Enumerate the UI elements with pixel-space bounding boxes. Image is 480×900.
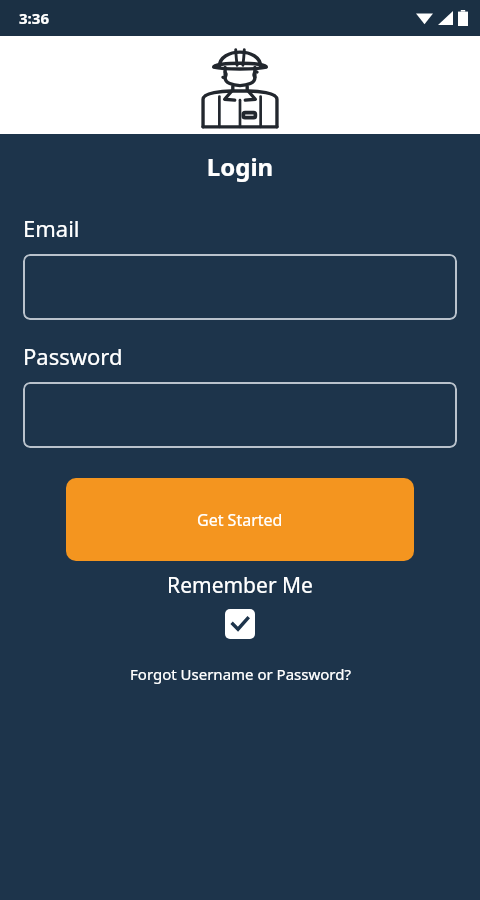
- staticText: 3:36: [19, 8, 49, 28]
- button[interactable]: [23, 382, 457, 448]
- staticText: Remember Me: [0, 571, 480, 600]
- button[interactable]: Get Started: [66, 478, 414, 561]
- button[interactable]: [23, 254, 457, 320]
- staticText: Password: [23, 341, 123, 371]
- staticText: Email: [23, 213, 80, 243]
- staticText: Login: [0, 150, 480, 183]
- button[interactable]: Remember Me checkbox: [225, 609, 255, 639]
- staticText: Get Started: [197, 509, 283, 531]
- button[interactable]: Forgot Username or Password?: [122, 660, 359, 688]
